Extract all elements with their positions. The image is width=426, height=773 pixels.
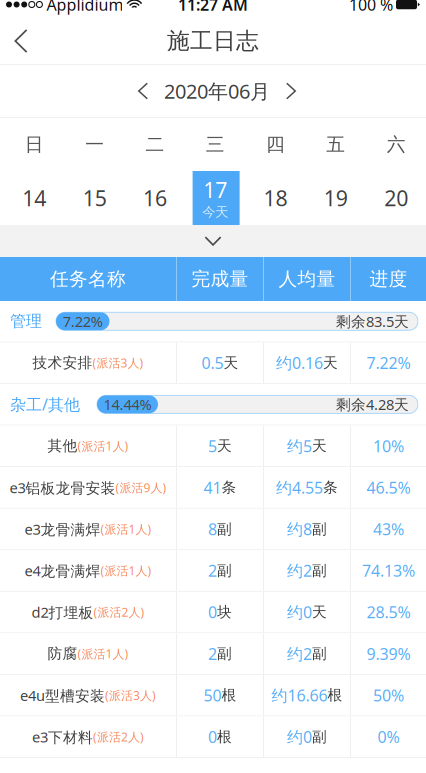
staticText: 74.13% xyxy=(362,560,415,581)
staticText: (派活2人) xyxy=(93,604,144,620)
staticText: 43% xyxy=(373,518,404,540)
staticText: 施工日志 xyxy=(167,27,259,55)
staticText: 7.22% xyxy=(63,311,103,331)
staticText: 今天 xyxy=(202,204,228,220)
staticText: (派活9人) xyxy=(115,479,166,495)
staticText: 28.5% xyxy=(366,601,410,623)
staticText: 18 xyxy=(263,184,287,212)
staticText: (派活1人) xyxy=(100,521,151,537)
staticText: d2打埋板 xyxy=(31,602,93,622)
staticText: 根 xyxy=(327,686,342,704)
staticText: 天 xyxy=(323,354,338,372)
staticText: e3龙骨满焊 xyxy=(24,519,100,539)
staticText: 14.44% xyxy=(103,395,151,414)
staticText: 副 xyxy=(217,520,232,538)
staticText: 根 xyxy=(217,728,232,746)
staticText: 其他 xyxy=(47,437,77,455)
staticText: 技术安排 xyxy=(32,354,92,372)
staticText: 防腐 xyxy=(47,645,77,663)
staticText: (派活2人) xyxy=(93,729,144,745)
button[interactable]: d2打埋板 xyxy=(0,592,426,632)
staticText: 0 xyxy=(208,726,217,747)
staticText: 约2 xyxy=(287,560,312,581)
button[interactable]: 二 xyxy=(125,118,185,225)
staticText: 剩余83.5天 xyxy=(336,311,409,331)
staticText: 2 xyxy=(208,643,217,664)
staticText: 19 xyxy=(324,184,348,212)
button[interactable]: 四 xyxy=(245,118,306,225)
staticText: 日 xyxy=(25,133,44,156)
staticText: 2 xyxy=(208,560,217,581)
staticText: 天 xyxy=(312,437,327,455)
staticText: 六 xyxy=(387,133,406,156)
staticText: 天 xyxy=(312,603,327,621)
button[interactable]: 其他 xyxy=(0,426,426,466)
staticText: 副 xyxy=(312,520,327,538)
staticText: 11:27 AM xyxy=(178,0,248,15)
staticText: 块 xyxy=(217,603,232,621)
staticText: 剩余4.28天 xyxy=(336,395,409,414)
button[interactable]: e4u型槽安装 xyxy=(0,675,426,715)
staticText: 15 xyxy=(83,184,107,212)
staticText: 人均量 xyxy=(278,267,335,290)
staticText: 0 xyxy=(208,601,217,623)
staticText: 约0 xyxy=(287,601,312,623)
staticText: 副 xyxy=(217,562,232,580)
button[interactable]: e3铝板龙骨安装 xyxy=(0,467,426,508)
button[interactable]: Back xyxy=(0,18,42,64)
staticText: 0.5 xyxy=(201,352,223,373)
staticText: (派活1人) xyxy=(77,646,128,662)
staticText: 7.22% xyxy=(366,352,410,373)
staticText: 约4.55 xyxy=(276,477,323,498)
button[interactable]: 六 xyxy=(366,118,426,225)
staticText: 进度 xyxy=(369,267,407,290)
staticText: 完成量 xyxy=(191,267,248,290)
staticText: 管理 xyxy=(10,311,42,331)
staticText: 2020年06月 xyxy=(164,78,270,104)
staticText: 四 xyxy=(266,133,285,156)
button[interactable]: 一 xyxy=(64,118,125,225)
staticText: 副 xyxy=(312,562,327,580)
staticText: 副 xyxy=(217,645,232,663)
button[interactable]: 技术安排 xyxy=(0,343,426,383)
button[interactable]: 防腐 xyxy=(0,633,426,674)
staticText: Applidium xyxy=(46,0,123,15)
button[interactable]: Next month xyxy=(270,70,312,112)
staticText: 50 xyxy=(203,685,221,706)
staticText: 20 xyxy=(384,184,408,212)
staticText: 17 xyxy=(203,176,227,204)
button[interactable]: Collapse calendar xyxy=(0,225,426,257)
button[interactable]: e3龙骨满焊 xyxy=(0,509,426,549)
staticText: 0% xyxy=(377,726,399,747)
staticText: 三 xyxy=(206,133,225,156)
staticText: 副 xyxy=(312,645,327,663)
staticText: 任务名称 xyxy=(50,267,126,290)
staticText: 天 xyxy=(217,437,232,455)
staticText: 天 xyxy=(223,354,238,372)
staticText: 8 xyxy=(208,518,217,540)
button[interactable]: 三 xyxy=(185,118,245,225)
button[interactable]: 五 xyxy=(306,118,366,225)
staticText: 50% xyxy=(373,685,404,706)
staticText: 副 xyxy=(312,728,327,746)
button[interactable]: 日 xyxy=(4,118,64,225)
button[interactable]: e4龙骨满焊 xyxy=(0,550,426,591)
staticText: (派活3人) xyxy=(92,355,143,371)
staticText: 二 xyxy=(145,133,164,156)
staticText: (派活3人) xyxy=(105,687,156,703)
staticText: 约0.16 xyxy=(276,352,323,373)
staticText: 16 xyxy=(143,184,167,212)
button[interactable]: Previous month xyxy=(122,70,164,112)
button[interactable]: e3下材料 xyxy=(0,716,426,757)
staticText: 10% xyxy=(373,435,404,456)
staticText: e3下材料 xyxy=(32,727,93,747)
staticText: e3铝板龙骨安装 xyxy=(9,478,115,497)
staticText: 9.39% xyxy=(366,643,410,664)
staticText: 一 xyxy=(85,133,104,156)
staticText: 约0 xyxy=(287,726,312,747)
staticText: 100 % xyxy=(349,0,393,15)
staticText: 41 xyxy=(203,477,221,498)
staticText: 根 xyxy=(221,686,236,704)
staticText: 杂工/其他 xyxy=(10,394,80,415)
staticText: 条 xyxy=(323,478,338,496)
